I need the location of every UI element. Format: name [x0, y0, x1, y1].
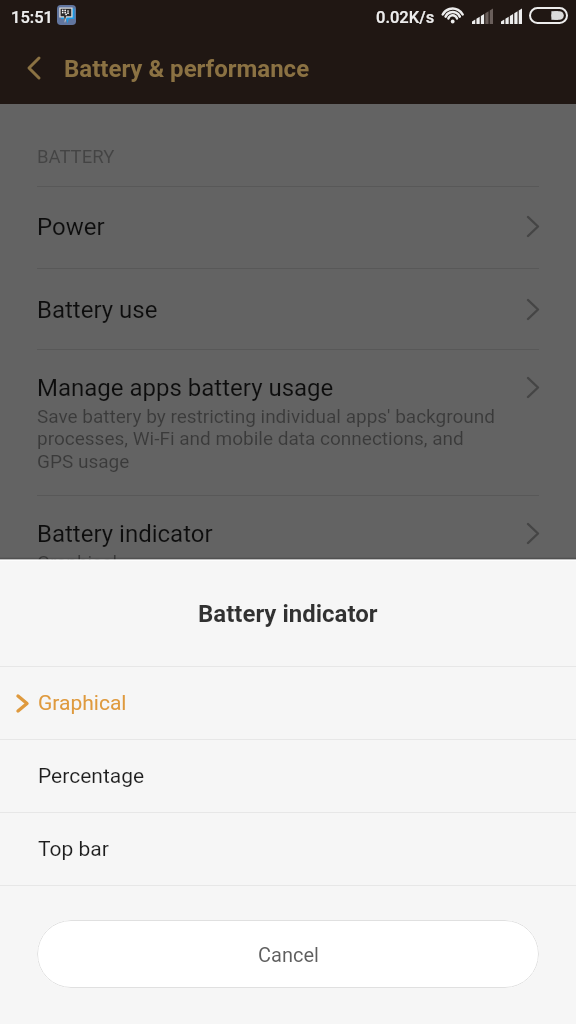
button[interactable]: Battery use: [0, 268, 576, 349]
button[interactable]: Graphical: [0, 667, 576, 739]
staticText: Battery use: [37, 296, 158, 324]
staticText: Graphical: [38, 691, 127, 716]
staticText: Percentage: [38, 764, 145, 789]
staticText: Battery indicator: [37, 520, 213, 548]
staticText: 15:51: [11, 8, 53, 27]
button[interactable]: Battery indicator: [0, 495, 576, 595]
button[interactable]: Cancel: [37, 920, 539, 988]
staticText: Power: [37, 213, 105, 241]
staticText: BATTERY: [37, 146, 115, 168]
button[interactable]: Power: [0, 186, 576, 268]
staticText: 0.02K/s: [376, 8, 435, 27]
staticText: Graphical: [37, 551, 499, 573]
button[interactable]: Back: [0, 40, 56, 104]
staticText: Manage apps battery usage: [37, 374, 334, 402]
button[interactable]: Percentage: [0, 740, 576, 812]
staticText: Battery & performance: [64, 55, 310, 83]
button[interactable]: Top bar: [0, 813, 576, 885]
staticText: Save battery by restricting individual a…: [37, 405, 499, 472]
staticText: Cancel: [258, 943, 319, 966]
staticText: Battery indicator: [198, 600, 378, 628]
staticText: Top bar: [38, 837, 109, 862]
button[interactable]: Manage apps battery usage: [0, 349, 576, 495]
